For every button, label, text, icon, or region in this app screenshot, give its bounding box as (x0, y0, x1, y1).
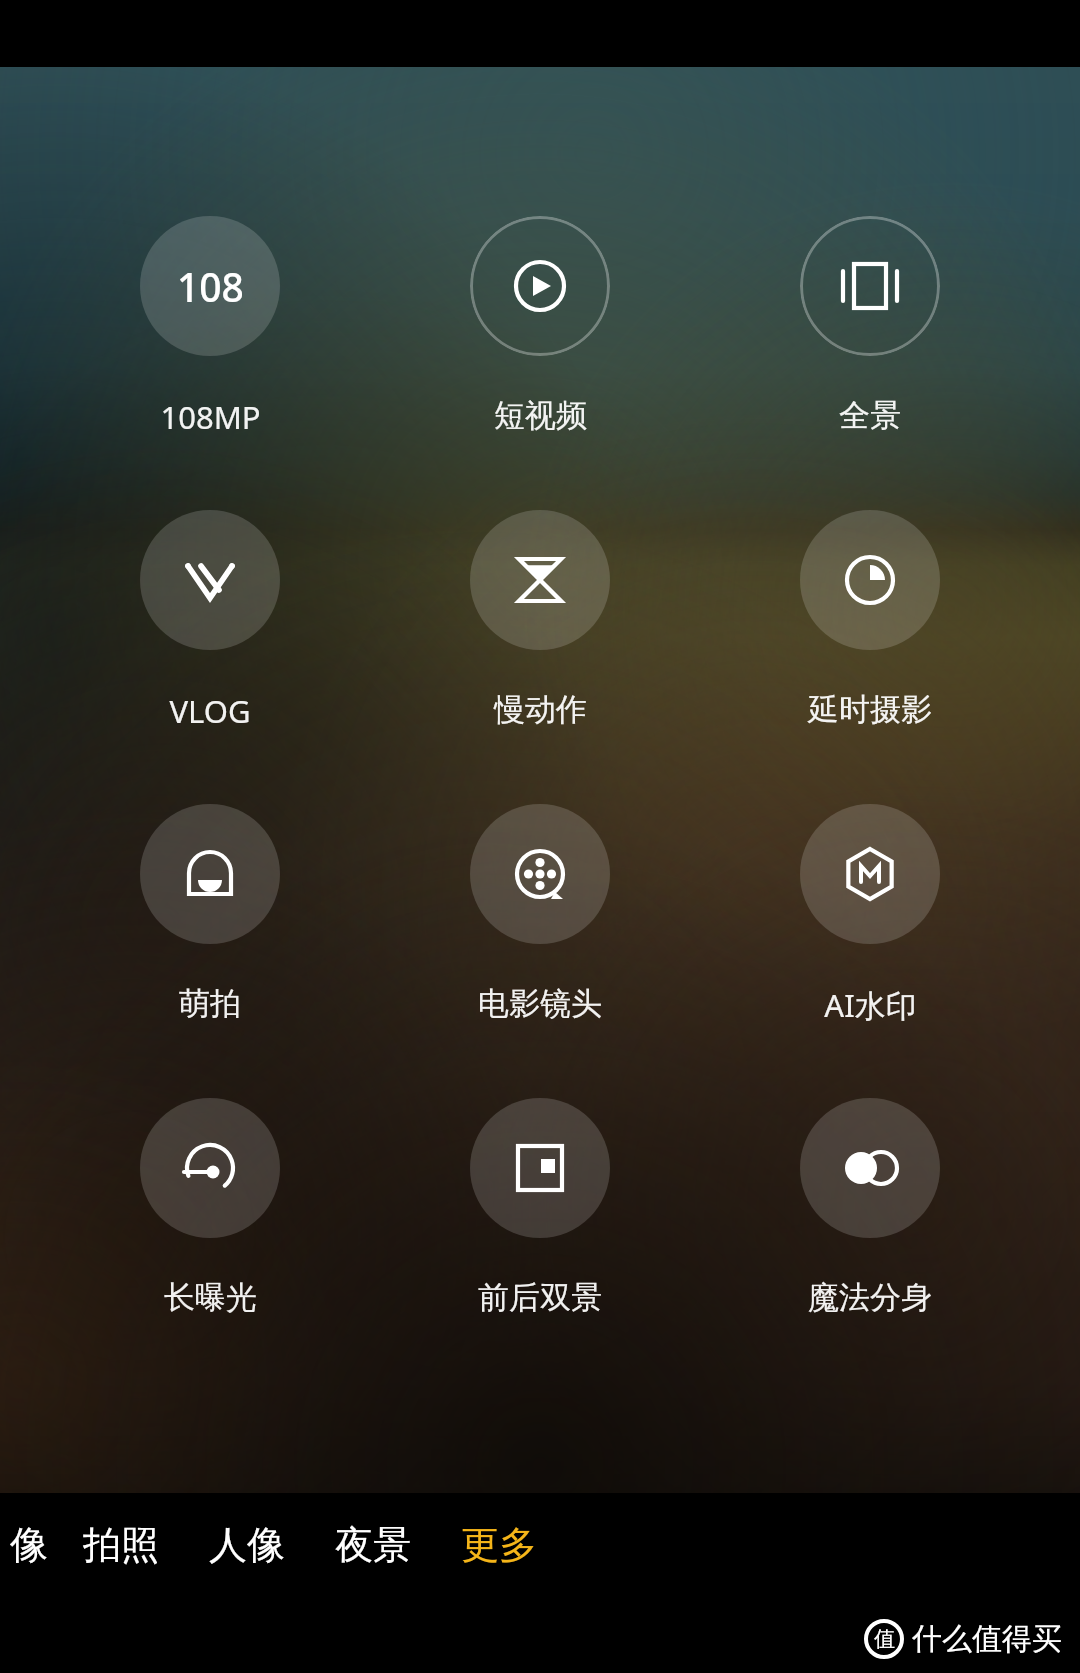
button[interactable]: 短视频 (420, 216, 660, 435)
staticText: 108 (177, 260, 244, 313)
button[interactable]: 全景 (750, 216, 990, 435)
other: 萌拍 (140, 804, 280, 944)
staticText: 值 (874, 1626, 895, 1652)
staticText: VLOG (169, 690, 251, 730)
staticText: 人像 (209, 1521, 285, 1569)
other: 长曝光 (140, 1098, 280, 1238)
staticText: 慢动作 (494, 690, 587, 729)
button[interactable]: 像 (0, 1503, 58, 1587)
button[interactable]: 108 (90, 216, 330, 436)
staticText: 短视频 (494, 396, 587, 435)
staticText: 前后双景 (478, 1278, 602, 1317)
button[interactable]: 拍照 (58, 1503, 184, 1587)
other: 前后双景 (470, 1098, 610, 1238)
other: 魔法分身 (800, 1098, 940, 1238)
staticText: 电影镜头 (478, 984, 602, 1023)
staticText: 萌拍 (179, 984, 241, 1023)
button[interactable]: 电影镜头 (420, 804, 660, 1023)
staticText: 魔法分身 (808, 1278, 932, 1317)
other: AI水印 (800, 804, 940, 944)
button[interactable]: 慢动作 (420, 510, 660, 729)
button[interactable]: 夜景 (310, 1503, 436, 1587)
other: 短视频 (470, 216, 610, 356)
button[interactable]: 前后双景 (420, 1098, 660, 1317)
staticText: AI水印 (824, 984, 917, 1024)
other: 全景 (800, 216, 940, 356)
button[interactable]: 延时摄影 (750, 510, 990, 729)
button[interactable]: VLOG (90, 510, 330, 730)
button[interactable]: 长曝光 (90, 1098, 330, 1317)
staticText: 长曝光 (164, 1278, 257, 1317)
button[interactable]: 萌拍 (90, 804, 330, 1023)
staticText: 什么值得买 (912, 1620, 1062, 1658)
staticText: 全景 (839, 396, 901, 435)
other: 慢动作 (470, 510, 610, 650)
button[interactable]: AI水印 (750, 804, 990, 1024)
staticText: 像 (10, 1521, 48, 1569)
button[interactable]: 更多 (436, 1503, 562, 1587)
staticText: 更多 (461, 1521, 537, 1569)
other: VLOG (140, 510, 280, 650)
staticText: 108MP (160, 396, 261, 436)
button[interactable]: 魔法分身 (750, 1098, 990, 1317)
other: 电影镜头 (470, 804, 610, 944)
button[interactable]: 人像 (184, 1503, 310, 1587)
staticText: 拍照 (83, 1521, 159, 1569)
staticText: 延时摄影 (808, 690, 932, 729)
staticText: 夜景 (335, 1521, 411, 1569)
other: 延时摄影 (800, 510, 940, 650)
